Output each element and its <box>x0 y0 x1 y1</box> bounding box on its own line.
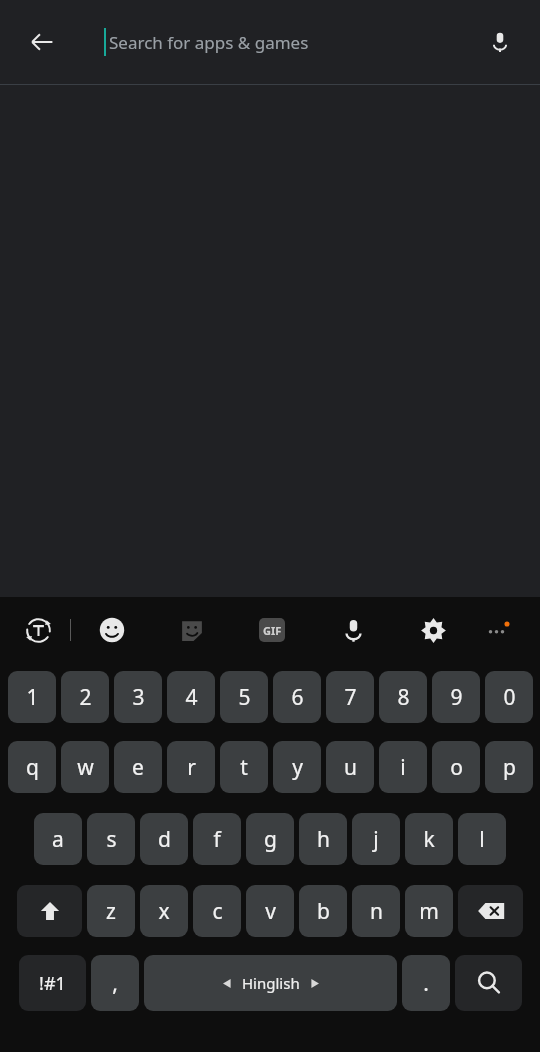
staticText: u <box>344 753 357 782</box>
button[interactable]: 2 <box>61 671 109 723</box>
button[interactable]: 3 <box>114 671 162 723</box>
staticText: , <box>112 969 118 998</box>
staticText: x <box>158 897 170 926</box>
button[interactable]: h <box>299 813 347 865</box>
button[interactable]: j <box>352 813 400 865</box>
staticText: t <box>240 753 248 782</box>
staticText: 4 <box>185 683 198 712</box>
button[interactable]: w <box>61 741 109 793</box>
staticText: q <box>26 753 39 782</box>
staticText: o <box>450 753 463 782</box>
button[interactable]: l <box>458 813 506 865</box>
button[interactable]: 7 <box>326 671 374 723</box>
staticText: Hinglish <box>242 973 300 993</box>
button[interactable]: y <box>273 741 321 793</box>
staticText: w <box>77 753 94 782</box>
button[interactable]: x <box>140 885 188 937</box>
staticText: z <box>106 897 116 926</box>
staticText: GIF <box>263 623 282 638</box>
button[interactable]: t <box>220 741 268 793</box>
staticText: n <box>370 897 383 926</box>
button[interactable]: m <box>405 885 453 937</box>
button[interactable]: 8 <box>379 671 427 723</box>
button[interactable]: v <box>246 885 294 937</box>
button[interactable]: 5 <box>220 671 268 723</box>
button[interactable]: p <box>485 741 533 793</box>
button[interactable]: . <box>402 955 450 1011</box>
button[interactable]: n <box>352 885 400 937</box>
button[interactable]: Emoji <box>90 608 134 652</box>
staticText: v <box>265 897 276 926</box>
button[interactable]: d <box>140 813 188 865</box>
staticText: k <box>423 825 435 854</box>
button[interactable]: u <box>326 741 374 793</box>
button[interactable]: 4 <box>167 671 215 723</box>
staticText: y <box>292 753 303 782</box>
staticText: i <box>400 753 406 782</box>
staticText: d <box>158 825 171 854</box>
staticText: s <box>106 825 117 854</box>
button[interactable]: Voice search <box>476 18 524 66</box>
staticText: 0 <box>503 683 516 712</box>
button[interactable]: Settings <box>411 608 455 652</box>
button[interactable]: Stickers <box>170 608 214 652</box>
staticText: e <box>132 753 144 782</box>
button[interactable]: k <box>405 813 453 865</box>
button[interactable]: , <box>91 955 139 1011</box>
staticText: !#1 <box>39 971 66 996</box>
button[interactable]: 9 <box>432 671 480 723</box>
button[interactable]: o <box>432 741 480 793</box>
staticText: 3 <box>132 683 145 712</box>
button[interactable]: GIF <box>250 608 294 652</box>
staticText: Search for apps & games <box>109 31 309 54</box>
staticText: m <box>419 897 439 926</box>
button[interactable]: i <box>379 741 427 793</box>
button[interactable]: 6 <box>273 671 321 723</box>
staticText: 5 <box>238 683 251 712</box>
button[interactable]: a <box>34 813 82 865</box>
staticText: r <box>187 753 196 782</box>
button[interactable]: b <box>299 885 347 937</box>
button[interactable]: Shift <box>17 885 82 937</box>
staticText: 1 <box>26 683 39 712</box>
staticText: f <box>213 825 221 854</box>
staticText: j <box>373 825 379 854</box>
button[interactable]: e <box>114 741 162 793</box>
button[interactable]: g <box>246 813 294 865</box>
staticText: 8 <box>397 683 410 712</box>
button[interactable]: s <box>87 813 135 865</box>
button[interactable]: r <box>167 741 215 793</box>
button[interactable]: Search <box>455 955 522 1011</box>
button[interactable]: Back <box>18 18 66 66</box>
button[interactable]: z <box>87 885 135 937</box>
button[interactable]: More options <box>476 608 520 652</box>
staticText: 7 <box>344 683 357 712</box>
staticText: b <box>317 897 330 926</box>
button[interactable]: !#1 <box>19 955 86 1011</box>
staticText: c <box>212 897 223 926</box>
button[interactable]: Voice input <box>331 608 375 652</box>
button[interactable]: Space, Hinglish <box>144 955 397 1011</box>
staticText: . <box>423 969 429 998</box>
staticText: 9 <box>450 683 463 712</box>
staticText: 6 <box>291 683 304 712</box>
button[interactable]: 1 <box>8 671 56 723</box>
button[interactable]: q <box>8 741 56 793</box>
staticText: a <box>52 825 64 854</box>
button[interactable]: f <box>193 813 241 865</box>
staticText: 2 <box>79 683 92 712</box>
button[interactable]: Backspace <box>458 885 523 937</box>
button[interactable]: Translate <box>16 608 60 652</box>
staticText: g <box>264 825 277 854</box>
staticText: l <box>479 825 485 854</box>
staticText: h <box>317 825 330 854</box>
staticText: p <box>503 753 516 782</box>
button[interactable]: 0 <box>485 671 533 723</box>
button[interactable]: c <box>193 885 241 937</box>
